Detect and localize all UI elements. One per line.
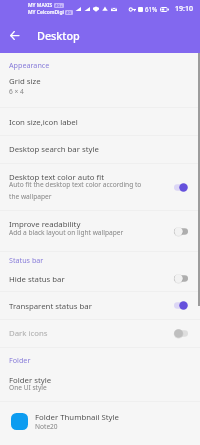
staticText: Improve readability [9,219,81,230]
button[interactable]: Dark icons [0,320,200,347]
staticText: Desktop search bar style [9,144,99,155]
staticText: One UI style [9,383,149,392]
staticText: 6 × 4 [9,87,149,96]
button[interactable]: Back [5,26,24,45]
staticText: MY CelcomDigi [28,9,64,16]
staticText: Desktop [37,28,80,43]
staticText: Folder style [9,375,52,386]
staticText: Add a black layout on light wallpaper [9,228,145,237]
staticText: Desktop text color auto fit [9,172,105,183]
button[interactable]: Grid size [0,73,200,107]
button[interactable]: Desktop search bar style [0,136,200,163]
button[interactable]: Improve readability [0,211,200,251]
staticText: MY MAXIS [28,2,53,9]
staticText: Appearance [9,60,50,70]
staticText: 4G [66,10,72,15]
staticText: 4G+ [55,3,63,8]
staticText: Folder Thumbnail Style [35,412,119,423]
button[interactable]: Hide status bar [0,266,200,291]
staticText: Grid size [9,76,41,87]
staticText: Folder [9,355,31,365]
staticText: 19:10 [175,4,193,14]
staticText: Dark icons [9,328,48,339]
staticText: Hide status bar [9,274,65,285]
staticText: Transparent status bar [9,301,92,312]
button[interactable]: Folder Thumbnail Style [0,402,200,445]
button[interactable]: Icon size,icon label [0,108,200,135]
staticText: Auto fit the desktop text color accordin… [9,180,145,201]
staticText: Note20 [35,422,58,431]
staticText: 61% [145,5,158,13]
button[interactable]: Desktop text color auto fit [0,164,200,210]
staticText: Status bar [9,255,44,265]
button[interactable]: Folder style [0,366,200,401]
staticText: Icon size,icon label [9,117,78,128]
button[interactable]: Transparent status bar [0,292,200,319]
